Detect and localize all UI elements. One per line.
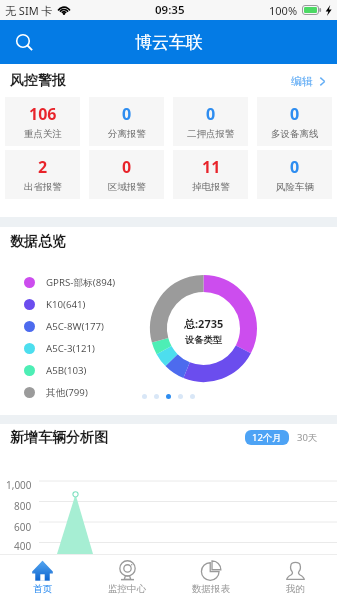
staticText: 二押点报警 [187,128,235,140]
staticText: 数据报表 [192,583,230,595]
button[interactable]: 12个月 [245,430,289,445]
staticText: 2 [38,156,48,178]
staticText: 1,000 [6,478,32,492]
staticText: 其他(799) [46,386,88,399]
staticText: 监控中心 [108,583,146,595]
staticText: 掉电报警 [192,181,230,193]
button[interactable]: 30天 [297,430,318,445]
staticText: 0 [290,103,300,125]
staticText: 106 [29,103,57,125]
staticText: 重点关注 [24,128,62,140]
button[interactable]: 数据报表 [169,555,253,600]
staticText: 400 [14,539,32,553]
staticText: 出省报警 [24,181,62,193]
staticText: 分离报警 [108,128,146,140]
button[interactable]: 监控中心 [85,555,169,600]
staticText: 数据总览 [10,233,66,251]
button[interactable]: 106 [5,97,80,146]
staticText: 12个月 [252,431,282,444]
staticText: 0 [290,156,300,178]
staticText: 600 [14,520,32,534]
staticText: 0 [122,156,132,178]
staticText: 总:2735 [184,316,224,331]
button[interactable]: Search [6,24,42,60]
staticText: 新增车辆分析图 [10,429,108,447]
staticText: 09:35 [155,2,185,18]
button[interactable]: 0 [89,150,164,199]
button[interactable]: 首页 [0,555,85,600]
staticText: 30天 [297,431,318,444]
staticText: A5C-3(121) [46,342,95,355]
staticText: K10(641) [46,298,86,311]
button[interactable]: 0 [89,97,164,146]
staticText: 设备类型 [185,334,223,346]
staticText: 0 [206,103,216,125]
staticText: GPRS-部标(894) [46,276,116,289]
staticText: 100% [269,3,298,18]
button[interactable]: 0 [257,150,332,199]
button[interactable]: 0 [257,97,332,146]
staticText: 我的 [286,583,305,595]
staticText: 多设备离线 [271,128,319,140]
button[interactable]: 0 [173,97,248,146]
staticText: 首页 [33,583,52,595]
staticText: A5C-8W(177) [46,320,104,333]
staticText: 区域报警 [108,181,146,193]
staticText: A5B(103) [46,364,87,377]
staticText: 0 [122,103,132,125]
button[interactable]: 我的 [253,555,337,600]
staticText: 编辑 [291,74,313,88]
button[interactable]: 2 [5,150,80,199]
staticText: 风控警报 [10,72,66,90]
button[interactable]: 编辑 [291,72,328,90]
staticText: 800 [14,499,32,513]
staticText: 风险车辆 [276,181,314,193]
staticText: 博云车联 [135,32,203,53]
button[interactable]: 11 [173,150,248,199]
staticText: 无 SIM 卡 [5,3,53,18]
staticText: 11 [202,156,221,178]
